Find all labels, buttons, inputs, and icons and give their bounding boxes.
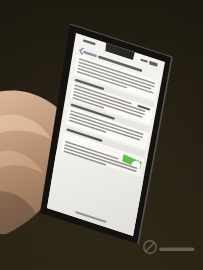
button[interactable]: Photo of an iPhone showing battery setti… bbox=[0, 0, 203, 270]
